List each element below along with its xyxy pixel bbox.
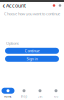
- staticText: Choose how you want to continue: [4, 11, 60, 16]
- button[interactable]: Notifications: [51, 2, 57, 9]
- button[interactable]: Sign in: [5, 56, 59, 62]
- button[interactable]: Continue: [5, 48, 59, 54]
- button[interactable]: Back: [1, 2, 6, 9]
- button[interactable]: Home: [0, 88, 16, 98]
- staticText: You: [53, 95, 58, 98]
- staticText: Options: [6, 40, 19, 46]
- staticText: Continue: [24, 48, 39, 53]
- staticText: Sign in: [26, 56, 37, 61]
- staticText: Home: [4, 95, 12, 98]
- staticText: Account: [6, 2, 26, 9]
- staticText: ‹: [2, 0, 4, 11]
- button[interactable]: Shop: [16, 88, 32, 98]
- button[interactable]: Cart: [32, 88, 48, 98]
- button[interactable]: You: [48, 88, 64, 98]
- staticText: Shop: [20, 95, 27, 98]
- staticText: Cart: [37, 95, 42, 98]
- button[interactable]: More: [57, 2, 63, 9]
